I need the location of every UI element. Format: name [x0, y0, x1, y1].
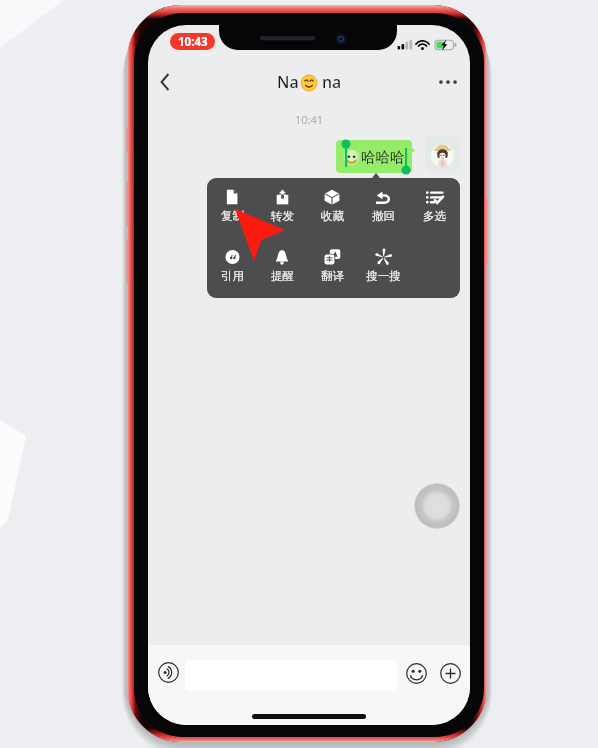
- staticText: Na: [277, 71, 299, 93]
- button[interactable]: Back: [148, 64, 183, 100]
- button[interactable]: 哈哈哈: [336, 140, 412, 173]
- button[interactable]: 多选: [409, 178, 460, 223]
- button[interactable]: Voice input: [156, 660, 180, 684]
- button[interactable]: 收藏: [307, 178, 358, 223]
- button[interactable]: Recording indicator: [170, 33, 215, 50]
- staticText: 复制: [221, 209, 244, 223]
- button[interactable]: Add attachment: [438, 661, 462, 685]
- staticText: 翻译: [321, 269, 344, 283]
- button[interactable]: 提醒: [257, 238, 307, 283]
- staticText: 收藏: [321, 209, 344, 223]
- staticText: 提醒: [271, 269, 294, 283]
- staticText: 10:43: [178, 34, 208, 50]
- button[interactable]: 搜一搜: [358, 238, 409, 283]
- button[interactable]: Emoji: [404, 661, 428, 685]
- staticText: 转发: [271, 209, 294, 223]
- staticText: 10:41: [295, 112, 324, 127]
- staticText: 哈哈哈: [361, 148, 405, 166]
- button[interactable]: Contact avatar: [425, 136, 460, 171]
- button[interactable]: 复制: [207, 178, 257, 223]
- other: Signal, Wi-Fi and battery: [396, 39, 458, 52]
- staticText: 多选: [423, 209, 446, 223]
- staticText: 搜一搜: [366, 269, 401, 283]
- button[interactable]: 翻译: [307, 238, 358, 283]
- button[interactable]: 转发: [257, 178, 307, 223]
- button[interactable]: 撤回: [358, 178, 409, 223]
- button[interactable]: More options: [430, 64, 466, 100]
- button[interactable]: AssistiveTouch: [414, 483, 460, 529]
- staticText: 引用: [221, 269, 244, 283]
- staticText: na: [322, 71, 342, 93]
- button[interactable]: 引用: [207, 238, 257, 283]
- staticText: 撤回: [372, 209, 395, 223]
